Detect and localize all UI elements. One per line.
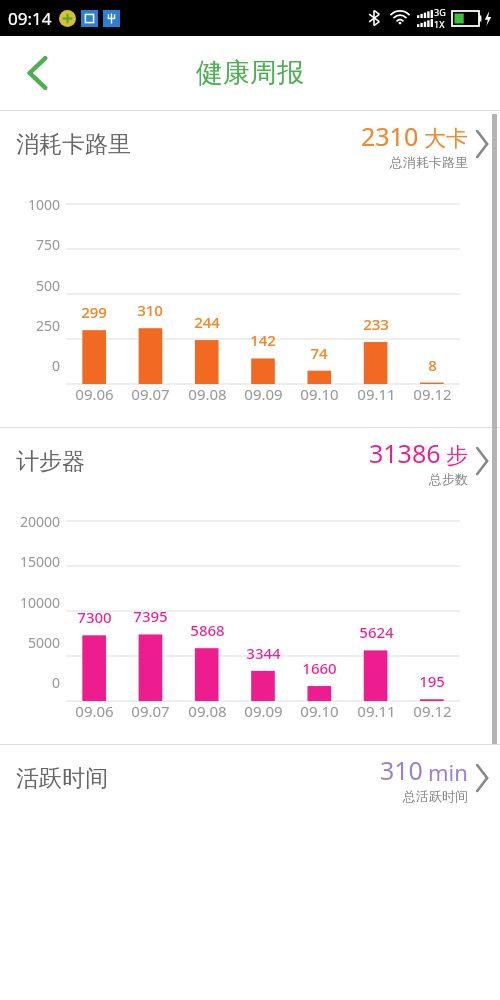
staticText: 3G xyxy=(434,6,446,18)
staticText: 5868 xyxy=(190,620,225,640)
staticText: 1660 xyxy=(302,658,337,678)
staticText: 09.10 xyxy=(300,701,339,721)
staticText: 74 xyxy=(310,343,328,363)
staticText: 总步数 xyxy=(429,471,468,487)
staticText: 09.12 xyxy=(413,701,452,721)
staticText: 大卡 xyxy=(424,125,468,153)
button[interactable]: 计步器 xyxy=(0,428,500,494)
staticText: 142 xyxy=(250,330,276,350)
staticText: 09.06 xyxy=(75,701,114,721)
staticText: 5000 xyxy=(27,633,60,652)
staticText: 09.06 xyxy=(75,384,114,404)
staticText: 31386 xyxy=(369,436,441,470)
staticText: 09.08 xyxy=(188,701,227,721)
staticText: 244 xyxy=(194,312,220,332)
staticText: 09.08 xyxy=(188,384,227,404)
staticText: 2310 xyxy=(361,119,419,153)
staticText: 09.12 xyxy=(413,384,452,404)
staticText: 09.10 xyxy=(300,384,339,404)
staticText: 195 xyxy=(419,671,445,691)
staticText: 1X xyxy=(434,18,445,30)
staticText: 20000 xyxy=(19,512,60,531)
staticText: 09.11 xyxy=(357,384,396,404)
staticText: 总活跃时间 xyxy=(403,788,468,804)
staticText: 3344 xyxy=(246,643,281,663)
staticText: 09.09 xyxy=(244,384,283,404)
staticText: 233 xyxy=(363,314,389,334)
button[interactable]: 消耗卡路里 xyxy=(0,111,500,177)
staticText: 09.07 xyxy=(131,701,170,721)
staticText: 步 xyxy=(446,442,468,470)
staticText: 10000 xyxy=(19,593,60,612)
staticText: 09.07 xyxy=(131,384,170,404)
staticText: 总消耗卡路里 xyxy=(390,154,468,170)
staticText: 消耗卡路里 xyxy=(16,130,131,159)
staticText: 7300 xyxy=(77,607,112,627)
staticText: min xyxy=(428,757,468,787)
staticText: 健康周报 xyxy=(196,56,304,90)
staticText: 计步器 xyxy=(16,447,85,476)
staticText: 09.11 xyxy=(357,701,396,721)
staticText: 500 xyxy=(35,276,60,295)
staticText: 1000 xyxy=(27,195,60,214)
staticText: 250 xyxy=(35,316,60,335)
staticText: 310 xyxy=(137,300,163,320)
staticText: 活跃时间 xyxy=(16,764,108,793)
staticText: 0 xyxy=(51,673,60,692)
staticText: 310 xyxy=(380,753,423,787)
staticText: 5624 xyxy=(359,622,394,642)
staticText: 750 xyxy=(35,235,60,254)
staticText: 09:14 xyxy=(8,7,52,30)
staticText: 15000 xyxy=(19,552,60,571)
staticText: 09.09 xyxy=(244,701,283,721)
button[interactable]: 活跃时间 xyxy=(0,745,500,811)
button[interactable]: Back xyxy=(12,47,64,99)
staticText: 8 xyxy=(428,355,437,375)
staticText: 299 xyxy=(81,302,107,322)
staticText: 0 xyxy=(51,356,60,375)
staticText: 7395 xyxy=(133,606,168,626)
